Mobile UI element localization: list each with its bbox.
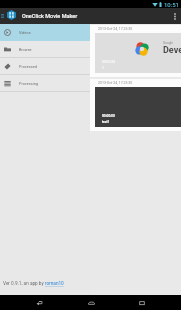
button[interactable]: Videos: [0, 24, 90, 41]
button[interactable]: Open navigation drawer: [0, 8, 6, 24]
button[interactable]: 2013-Oct-24, 17:23:30: [90, 79, 181, 131]
staticText: test1: [102, 120, 110, 124]
staticText: Developers: [163, 45, 181, 56]
staticText: Videos: [19, 30, 31, 34]
staticText: 1: [102, 66, 104, 70]
staticText: OneClick Movie Maker: [22, 13, 78, 19]
button[interactable]: 2013-Oct-24, 17:23:30: [90, 25, 181, 77]
button[interactable]: Processing: [0, 75, 90, 92]
button[interactable]: Back: [27, 295, 51, 310]
staticText: Processing: [19, 81, 38, 85]
staticText: Processed: [19, 64, 37, 68]
button[interactable]: Browse: [0, 41, 90, 58]
button[interactable]: Processed: [0, 58, 90, 75]
button[interactable]: More options: [169, 8, 181, 24]
button[interactable]: roman10: [45, 281, 64, 287]
button[interactable]: Recent apps: [130, 295, 154, 310]
staticText: Browse: [19, 47, 32, 51]
staticText: 2013-Oct-24, 17:23:30: [98, 27, 133, 31]
staticText: Google: [163, 41, 174, 45]
staticText: Ver 0.9.1, an app by: [3, 281, 45, 287]
staticText: 00:00:00: [102, 114, 115, 118]
staticText: 00:07:44: [102, 60, 115, 64]
staticText: 10:51: [164, 1, 179, 8]
staticText: 2013-Oct-24, 17:23:30: [98, 81, 133, 85]
button[interactable]: Home: [79, 295, 103, 310]
